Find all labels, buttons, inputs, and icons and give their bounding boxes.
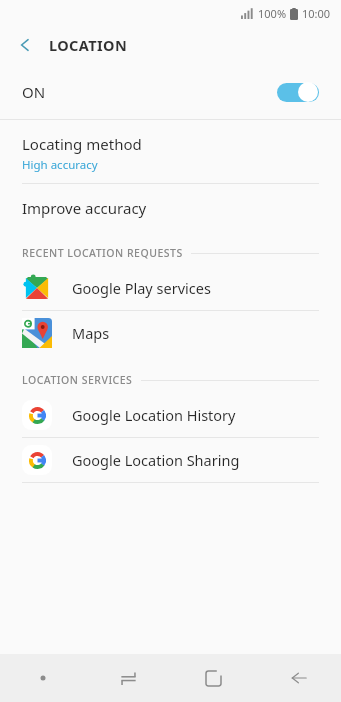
button[interactable]: ON xyxy=(0,64,341,119)
button[interactable]: Recents xyxy=(86,654,171,702)
staticText: RECENT LOCATION REQUESTS xyxy=(22,246,183,260)
staticText: High accuracy xyxy=(22,157,98,173)
button[interactable]: Back xyxy=(256,654,341,702)
button[interactable]: Home xyxy=(171,654,256,702)
button[interactable]: Maps xyxy=(0,311,341,355)
button[interactable]: Google Location Sharing xyxy=(0,438,341,482)
staticText: LOCATION xyxy=(49,35,128,55)
button[interactable]: Improve accuracy xyxy=(0,184,341,232)
staticText: 10:00 xyxy=(302,6,331,21)
staticText: Google Location History xyxy=(72,405,236,425)
button[interactable]: Back xyxy=(8,28,42,62)
staticText: Google Location Sharing xyxy=(72,450,240,470)
button[interactable]: Google Play services xyxy=(0,266,341,310)
button[interactable]: Locating method xyxy=(0,120,341,183)
staticText: Locating method xyxy=(22,134,142,154)
staticText: LOCATION SERVICES xyxy=(22,373,133,387)
button[interactable]: Google Location History xyxy=(0,393,341,437)
staticText: ON xyxy=(22,82,46,102)
staticText: Improve accuracy xyxy=(22,198,147,218)
button[interactable]: Hide navigation bar xyxy=(0,654,86,702)
staticText: Maps xyxy=(72,323,110,343)
staticText: 100% xyxy=(258,6,287,21)
staticText: Google Play services xyxy=(72,278,211,298)
